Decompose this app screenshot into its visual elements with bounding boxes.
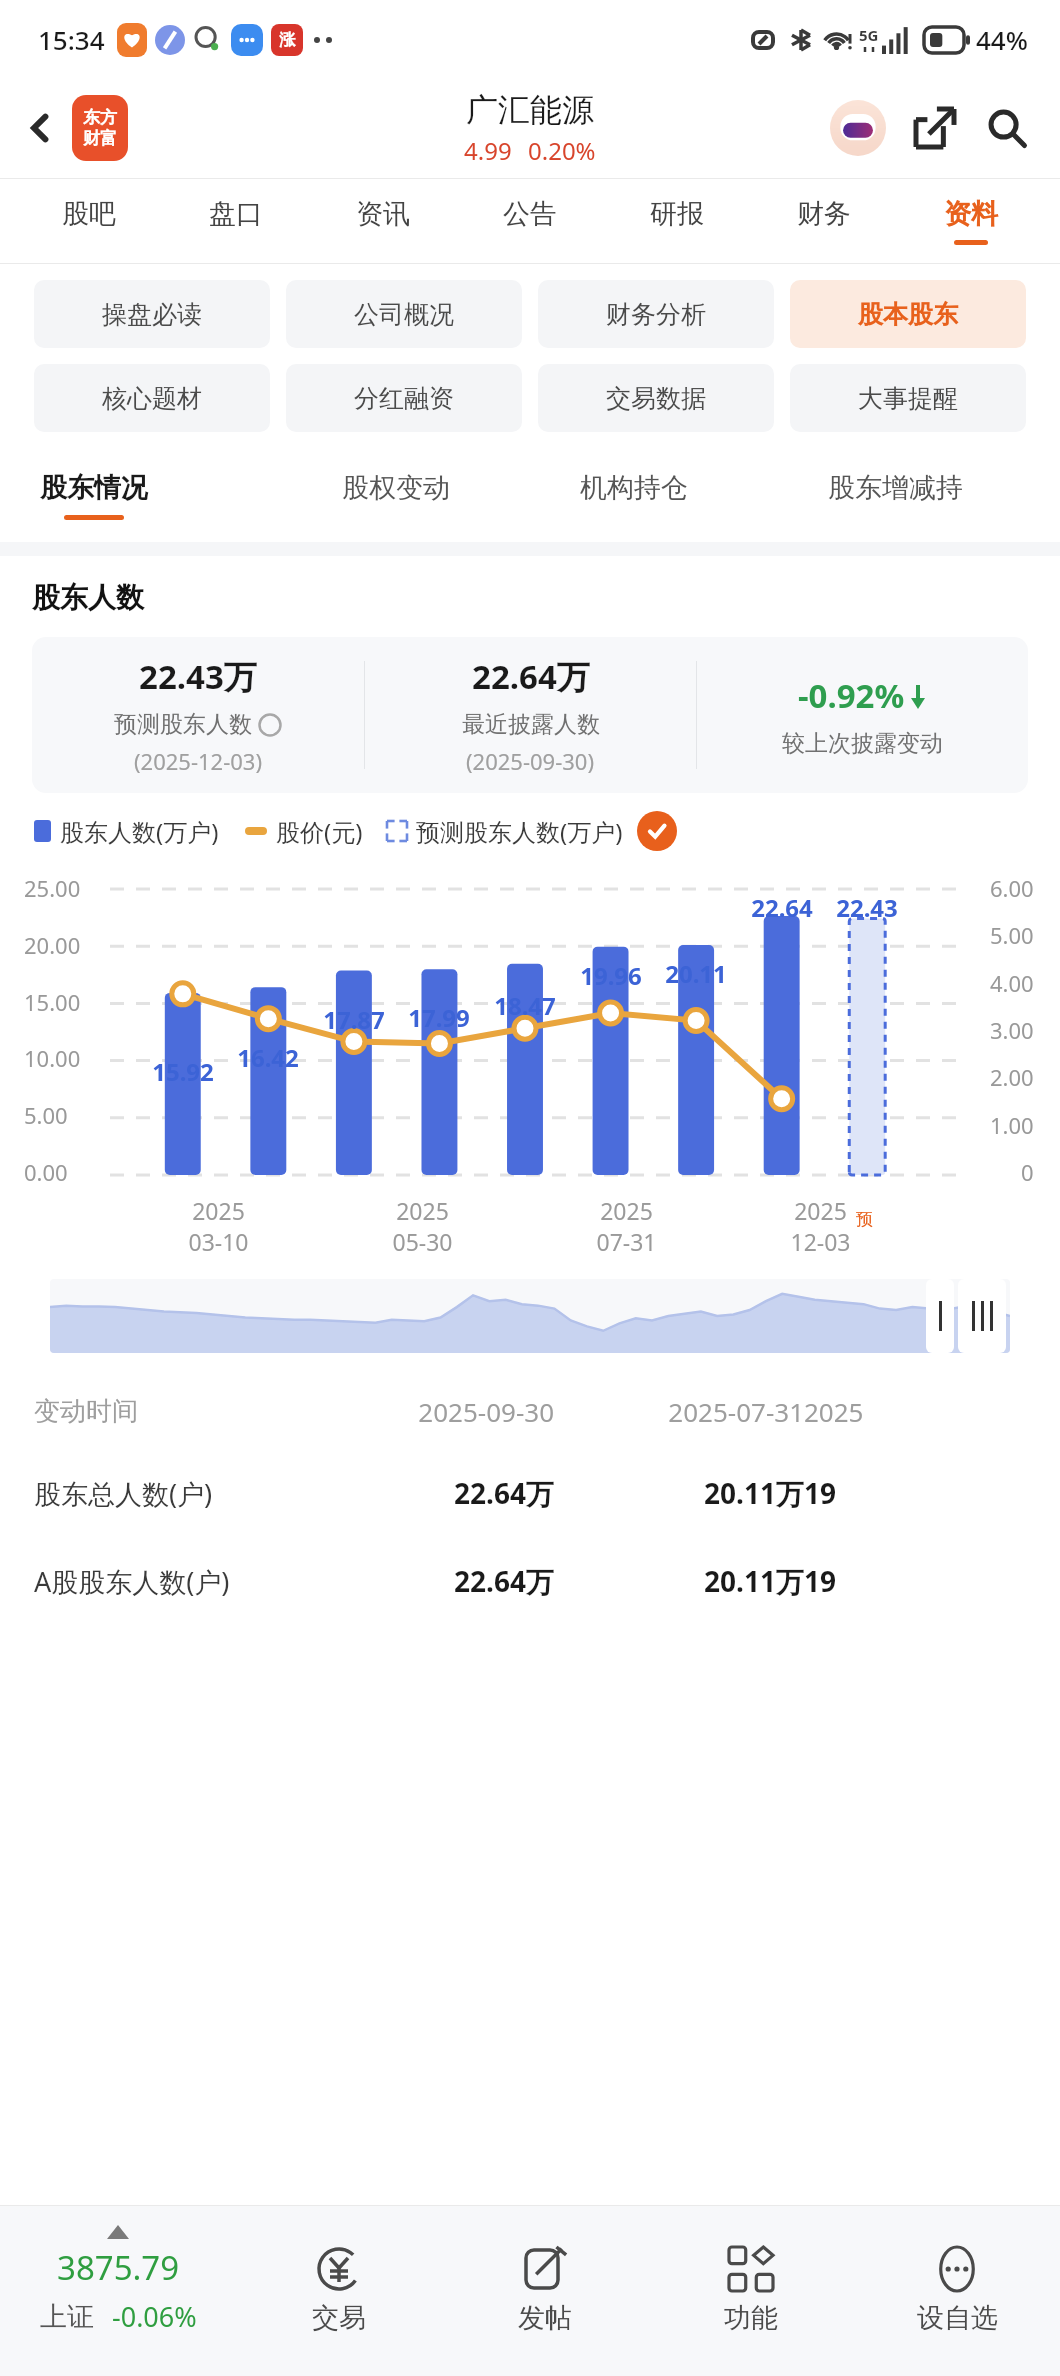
staticText: 盘口 (209, 197, 263, 231)
staticText: 6.00 (990, 873, 1034, 903)
staticText: 股东增减持 (828, 471, 963, 505)
button[interactable]: 财务分析 (538, 280, 774, 348)
staticText: 最近披露人数 (462, 710, 600, 739)
staticText: 5G (859, 25, 879, 45)
staticText: 功能 (724, 2301, 778, 2335)
staticText: 22.64万 (304, 1562, 554, 1600)
button[interactable]: 资讯 (309, 179, 456, 263)
staticText: 财务 (797, 197, 851, 231)
staticText: (2025-09-30) (466, 746, 595, 776)
staticText: 涨 (279, 30, 295, 50)
button[interactable]: 公司概况 (286, 280, 522, 348)
button[interactable]: 功能 (648, 2206, 854, 2376)
button[interactable]: 公告 (456, 179, 603, 263)
staticText: 操盘必读 (102, 299, 202, 330)
button[interactable]: Search (976, 97, 1038, 159)
button[interactable]: 财务 (750, 179, 897, 263)
button[interactable]: Back (10, 98, 70, 158)
staticText: 东方 (83, 107, 117, 128)
button[interactable]: 股东总人数(户) (34, 1449, 1060, 1537)
button[interactable]: 股本股东 (790, 280, 1026, 348)
button[interactable]: 盘口 (162, 179, 309, 263)
staticText: 4.99 (464, 134, 512, 167)
staticText: 19 (804, 1474, 837, 1512)
staticText: 19.96 (569, 959, 653, 992)
staticText: 10.00 (24, 1043, 81, 1073)
button[interactable]: 3875.79 (0, 2206, 236, 2376)
staticText: 研报 (650, 197, 704, 231)
staticText: 0 (1021, 1157, 1034, 1187)
staticText: 19 (804, 1562, 837, 1600)
staticText: 大事提醒 (858, 383, 958, 414)
button[interactable]: 资料 (897, 179, 1044, 263)
button[interactable]: 核心题材 (34, 364, 270, 432)
staticText: 20.11 (654, 957, 738, 990)
staticText: 20.11万 (554, 1474, 804, 1512)
button[interactable]: 东方财富 (72, 95, 128, 161)
staticText: 股东人数(万户) (60, 815, 219, 848)
staticText: 5.00 (24, 1100, 68, 1130)
button[interactable]: AI assistant (826, 96, 890, 160)
staticText: 2025-09-30 (304, 1394, 554, 1429)
staticText: 公告 (503, 197, 557, 231)
staticText: 机构持仓 (580, 471, 688, 505)
button[interactable] (50, 1279, 1010, 1353)
button[interactable]: 发帖 (442, 2206, 648, 2376)
staticText: 上证 (40, 2300, 94, 2334)
staticText: 2025-07-31 (554, 1394, 804, 1429)
staticText: 较上次披露变动 (782, 729, 943, 758)
button[interactable]: 交易 (236, 2206, 442, 2376)
staticText: (2025-12-03) (134, 746, 263, 776)
button[interactable]: Share (904, 97, 966, 159)
staticText: 股东情况 (40, 471, 148, 505)
button[interactable]: 研报 (603, 179, 750, 263)
button[interactable]: 股东增减持 (753, 448, 1038, 542)
staticText: 25.00 (24, 873, 81, 903)
button[interactable]: 机构持仓 (515, 448, 753, 542)
button[interactable]: 股吧 (16, 179, 162, 263)
staticText: 股东人数 (32, 580, 144, 615)
staticText: 公司概况 (354, 299, 454, 330)
staticText: 股权变动 (342, 471, 450, 505)
staticText: 股吧 (62, 197, 116, 231)
staticText: 股东总人数(户) (34, 1475, 304, 1512)
staticText: 0.20% (528, 134, 596, 167)
staticText: 预 (856, 1209, 873, 1230)
staticText: 1.00 (990, 1110, 1034, 1140)
staticText: -0.92% (798, 673, 905, 718)
staticText: 设自选 (917, 2301, 998, 2335)
staticText: 2025 07-31 (596, 1195, 657, 1257)
staticText: A股股东人数(户) (34, 1563, 304, 1600)
staticText: 4.00 (990, 968, 1034, 998)
staticText: 变动时间 (34, 1395, 304, 1428)
staticText: 3875.79 (57, 2245, 180, 2290)
staticText: 发帖 (518, 2301, 572, 2335)
staticText: 分红融资 (354, 383, 454, 414)
staticText: 2025 12-03 (790, 1195, 851, 1257)
staticText: 44% (976, 22, 1028, 57)
staticText: 16.42 (226, 1041, 310, 1074)
staticText: 交易 (312, 2301, 366, 2335)
staticText: 3.00 (990, 1015, 1034, 1045)
staticText: 预测股东人数(万户) (416, 815, 623, 848)
button[interactable]: 交易数据 (538, 364, 774, 432)
staticText: 22.64 (740, 891, 824, 924)
staticText: 0.00 (24, 1157, 68, 1187)
button[interactable]: 设自选 (854, 2206, 1060, 2376)
staticText: 股本股东 (858, 299, 958, 330)
button[interactable]: 分红融资 (286, 364, 522, 432)
staticText: 20.11万 (554, 1562, 804, 1600)
staticText: 预测股东人数 (114, 710, 252, 739)
button[interactable]: 股权变动 (277, 448, 515, 542)
staticText: 18.47 (483, 989, 567, 1022)
button[interactable]: Toggle forecast (637, 811, 677, 851)
staticText: 2025 (804, 1394, 864, 1429)
staticText: 财富 (83, 128, 117, 149)
button[interactable]: 大事提醒 (790, 364, 1026, 432)
staticText: 15.00 (24, 987, 81, 1017)
button[interactable]: A股股东人数(户) (34, 1537, 1060, 1625)
button[interactable]: 操盘必读 (34, 280, 270, 348)
button[interactable]: 股东情况 (40, 448, 277, 542)
staticText: 核心题材 (102, 383, 202, 414)
staticText: 15:34 (38, 22, 105, 57)
